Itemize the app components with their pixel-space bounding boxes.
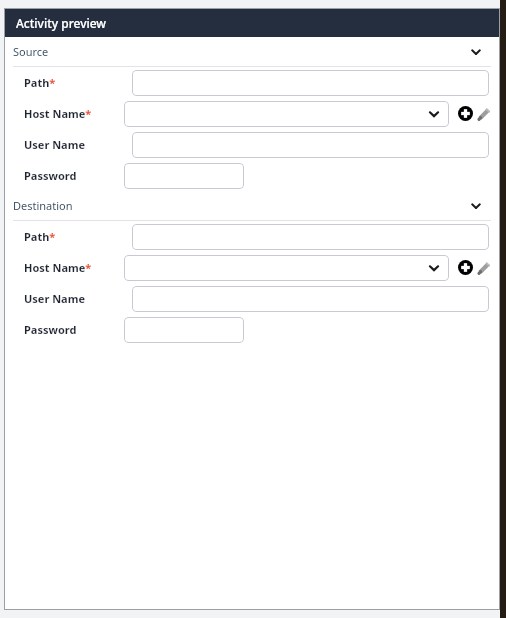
button[interactable] xyxy=(132,70,489,96)
button[interactable] xyxy=(124,255,449,281)
button[interactable] xyxy=(124,163,244,189)
staticText: User Name xyxy=(24,137,86,152)
staticText: Host Name* xyxy=(24,260,92,275)
button[interactable]: Collapse section xyxy=(468,44,484,60)
staticText: Activity preview xyxy=(16,15,107,31)
button[interactable]: Source xyxy=(4,37,500,66)
button[interactable]: Collapse section xyxy=(468,198,484,214)
staticText: Path* xyxy=(24,229,56,244)
button[interactable] xyxy=(132,132,489,158)
staticText: Host Name* xyxy=(24,106,92,121)
button[interactable]: Activity preview xyxy=(4,8,500,37)
button[interactable]: Edit host xyxy=(475,259,492,276)
staticText: Path* xyxy=(24,75,56,90)
staticText: User Name xyxy=(24,291,86,306)
staticText: Password xyxy=(24,168,77,183)
button[interactable] xyxy=(124,317,244,343)
button[interactable]: Add host xyxy=(457,105,474,122)
staticText: Source xyxy=(13,44,49,59)
button[interactable] xyxy=(132,224,489,250)
button[interactable] xyxy=(124,101,449,127)
button[interactable]: Add host xyxy=(457,259,474,276)
button[interactable]: Destination xyxy=(4,191,500,220)
button[interactable] xyxy=(132,286,489,312)
staticText: Password xyxy=(24,322,77,337)
staticText: Destination xyxy=(13,198,73,213)
button[interactable]: Edit host xyxy=(475,105,492,122)
